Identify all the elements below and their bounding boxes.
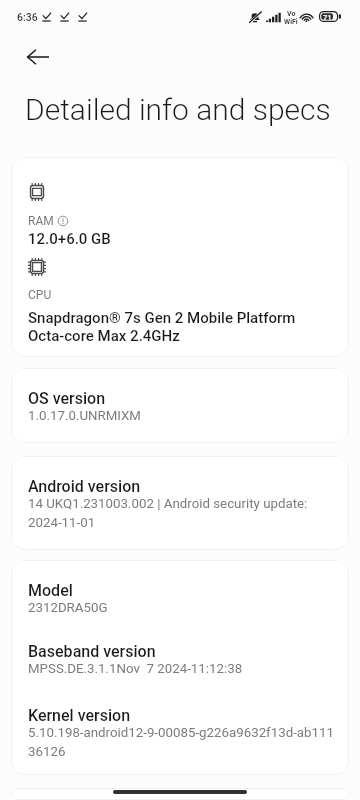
staticText: 6:36 — [17, 11, 38, 23]
staticText: Vo — [287, 10, 296, 18]
button[interactable]: Android version — [11, 456, 349, 550]
staticText: Baseband version — [28, 642, 156, 661]
button[interactable]: Back — [16, 35, 60, 79]
staticText: 12.0+6.0 GB — [28, 230, 111, 248]
staticText: Kernel version — [28, 706, 131, 725]
staticText: Detailed info and specs — [25, 92, 331, 127]
button[interactable]: Model — [11, 560, 349, 775]
staticText: WiFi — [284, 18, 298, 26]
staticText: OS version — [28, 389, 106, 408]
staticText: 2312DRA50G — [28, 600, 108, 616]
button[interactable]: RAM — [11, 157, 349, 357]
staticText: MPSS.DE.3.1.1Nov 7 2024-11:12:38 — [28, 661, 243, 677]
staticText: CPU — [28, 288, 52, 302]
staticText: RAM — [28, 214, 54, 228]
staticText: 1.0.17.0.UNRMIXM — [28, 408, 141, 424]
staticText: Model — [28, 581, 73, 600]
staticText: 5.10.198-android12-9-00085-g226a9632f13d… — [28, 725, 332, 759]
staticText: 71 — [323, 13, 332, 22]
button[interactable]: OS version — [11, 368, 349, 443]
staticText: 14 UKQ1.231003.002 | Android security up… — [28, 496, 308, 530]
staticText: Android version — [28, 477, 141, 496]
staticText: Snapdragon® 7s Gen 2 Mobile Platform Oct… — [28, 309, 296, 345]
button[interactable] — [11, 788, 349, 800]
